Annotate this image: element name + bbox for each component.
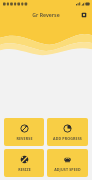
button[interactable]: More options [79,10,88,19]
button[interactable]: ADD PROGRESS [47,118,88,146]
staticText: ADD PROGRESS [53,136,82,141]
staticText: REVERSE [16,136,33,141]
button[interactable]: RESIZE [4,149,44,177]
staticText: RESIZE [18,167,31,172]
staticText: ADJUST SPEED [54,167,81,172]
button[interactable]: REVERSE [4,118,44,146]
staticText: Gr Reverse [32,11,60,18]
button[interactable]: ADJUST SPEED [47,149,88,177]
